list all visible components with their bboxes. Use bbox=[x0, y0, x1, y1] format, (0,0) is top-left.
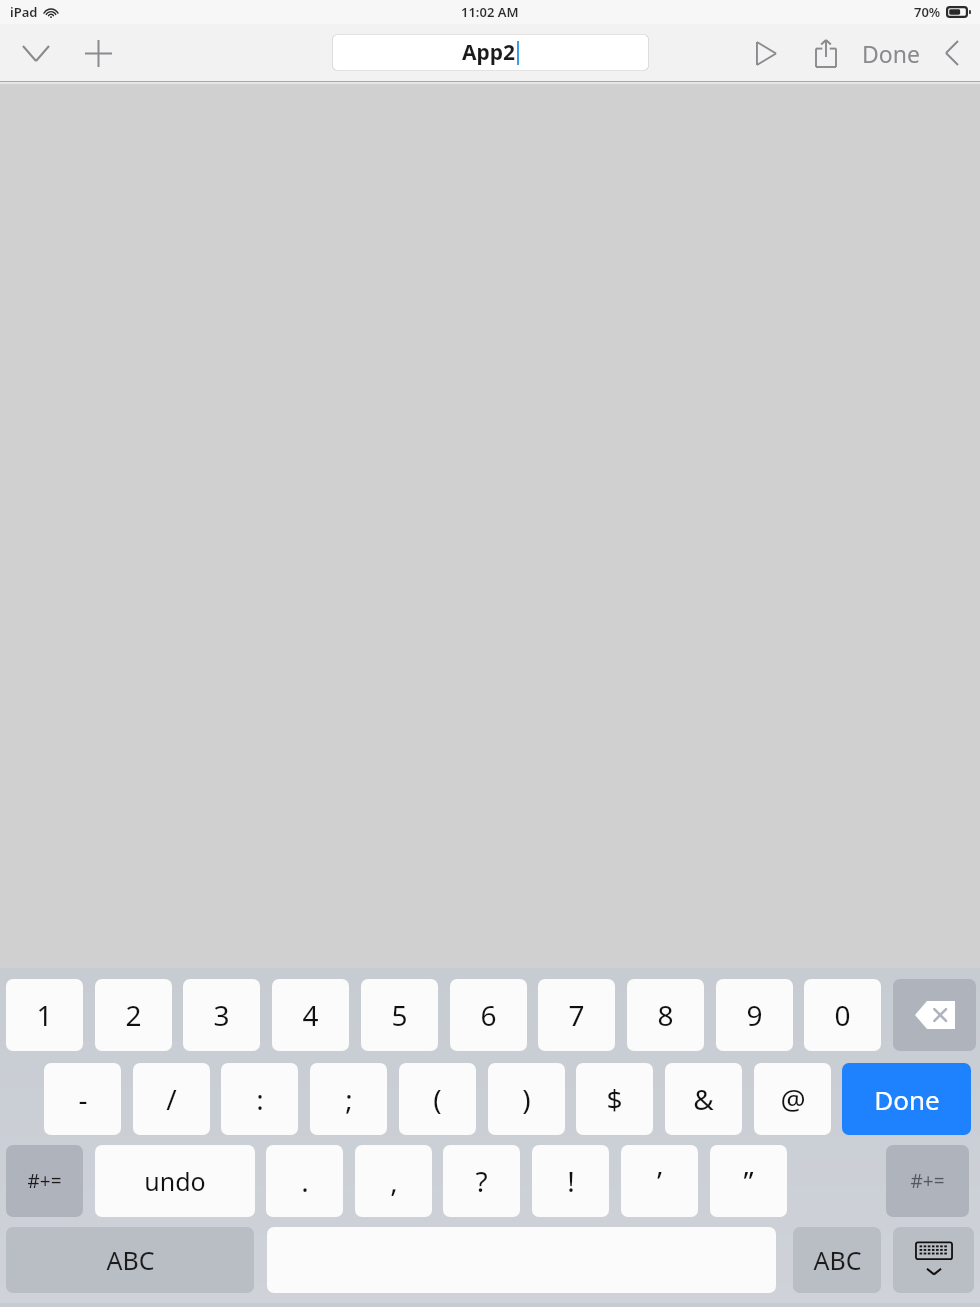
button[interactable]: undo bbox=[95, 1145, 255, 1217]
button[interactable]: 4 bbox=[272, 979, 349, 1051]
button[interactable]: - bbox=[44, 1063, 121, 1135]
button[interactable]: Done bbox=[842, 1063, 971, 1135]
button[interactable]: 2 bbox=[95, 979, 172, 1051]
staticText: & bbox=[693, 1080, 714, 1118]
staticText: ! bbox=[567, 1162, 575, 1200]
button[interactable]: Add bbox=[74, 29, 122, 77]
button[interactable]: . bbox=[266, 1145, 343, 1217]
staticText: ’ bbox=[657, 1162, 662, 1200]
staticText: 0 bbox=[834, 996, 851, 1034]
button[interactable]: $ bbox=[576, 1063, 653, 1135]
button[interactable]: Hide keyboard bbox=[893, 1227, 974, 1293]
button[interactable]: ABC bbox=[793, 1227, 881, 1293]
staticText: #+= bbox=[27, 1168, 62, 1194]
button[interactable]: Back bbox=[932, 29, 972, 77]
button[interactable]: Backspace bbox=[893, 979, 976, 1051]
button[interactable]: ? bbox=[443, 1145, 520, 1217]
staticText: 11:02 AM bbox=[461, 3, 519, 21]
staticText: iPad bbox=[10, 3, 38, 21]
button[interactable]: ; bbox=[310, 1063, 387, 1135]
button[interactable]: ABC bbox=[6, 1227, 254, 1293]
button[interactable]: ( bbox=[399, 1063, 476, 1135]
staticText: ABC bbox=[813, 1243, 862, 1277]
staticText: #+= bbox=[910, 1168, 945, 1194]
button[interactable]: , bbox=[355, 1145, 432, 1217]
staticText: $ bbox=[606, 1080, 623, 1118]
staticText: ) bbox=[522, 1080, 531, 1118]
button[interactable]: 5 bbox=[361, 979, 438, 1051]
button[interactable]: Run bbox=[740, 27, 792, 79]
staticText: ; bbox=[345, 1080, 353, 1118]
button[interactable]: 0 bbox=[804, 979, 881, 1051]
button[interactable]: ) bbox=[488, 1063, 565, 1135]
staticText: App2 bbox=[462, 38, 516, 67]
staticText: , bbox=[390, 1162, 398, 1200]
staticText: 5 bbox=[391, 996, 408, 1034]
button[interactable]: : bbox=[221, 1063, 298, 1135]
staticText: 9 bbox=[746, 996, 763, 1034]
staticText: Done bbox=[862, 38, 920, 69]
button[interactable]: #+= bbox=[6, 1145, 83, 1217]
staticText: @ bbox=[780, 1080, 806, 1118]
button[interactable]: & bbox=[665, 1063, 742, 1135]
button[interactable]: 9 bbox=[716, 979, 793, 1051]
button[interactable]: App2 bbox=[332, 34, 649, 71]
staticText: 6 bbox=[480, 996, 497, 1034]
button[interactable]: @ bbox=[754, 1063, 831, 1135]
button[interactable]: 6 bbox=[450, 979, 527, 1051]
button[interactable]: ” bbox=[710, 1145, 787, 1217]
button[interactable]: Share bbox=[800, 27, 852, 79]
staticText: Done bbox=[874, 1082, 940, 1117]
staticText: undo bbox=[144, 1164, 206, 1198]
button[interactable]: Done bbox=[862, 38, 920, 69]
staticText: : bbox=[256, 1080, 264, 1118]
staticText: 7 bbox=[568, 996, 585, 1034]
staticText: / bbox=[166, 1080, 177, 1118]
button[interactable]: Collapse bbox=[12, 29, 60, 77]
button[interactable]: ’ bbox=[621, 1145, 698, 1217]
staticText: 4 bbox=[302, 996, 319, 1034]
staticText: 1 bbox=[36, 996, 53, 1034]
staticText: . bbox=[301, 1162, 309, 1200]
button[interactable]: #+= bbox=[886, 1145, 969, 1217]
staticText: 2 bbox=[125, 996, 142, 1034]
staticText: 70% bbox=[914, 3, 941, 21]
button[interactable]: 3 bbox=[183, 979, 260, 1051]
staticText: ( bbox=[433, 1080, 442, 1118]
button[interactable]: ! bbox=[532, 1145, 609, 1217]
button[interactable]: / bbox=[133, 1063, 210, 1135]
staticText: - bbox=[78, 1080, 88, 1118]
button[interactable]: 7 bbox=[538, 979, 615, 1051]
staticText: ” bbox=[743, 1162, 754, 1200]
staticText: ABC bbox=[106, 1243, 155, 1277]
button[interactable]: 8 bbox=[627, 979, 704, 1051]
staticText: ? bbox=[475, 1162, 488, 1200]
staticText: 3 bbox=[213, 996, 230, 1034]
staticText: 8 bbox=[657, 996, 674, 1034]
button[interactable]: 1 bbox=[6, 979, 83, 1051]
